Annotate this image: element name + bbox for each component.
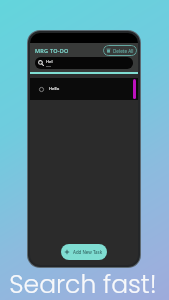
staticText: MRG TO-DO	[35, 47, 69, 54]
staticText: Add New Task	[73, 249, 103, 255]
button[interactable]: Hel	[35, 57, 133, 69]
button[interactable]: Delete All	[103, 45, 137, 56]
other: Delete All	[106, 48, 111, 53]
button[interactable]: Add New Task	[61, 244, 107, 260]
staticText: Delete All	[113, 48, 134, 54]
staticText: Hello	[49, 86, 60, 92]
staticText: Search fast!	[9, 267, 157, 300]
button[interactable]: Hello	[30, 78, 138, 100]
staticText: Hel	[46, 59, 53, 65]
